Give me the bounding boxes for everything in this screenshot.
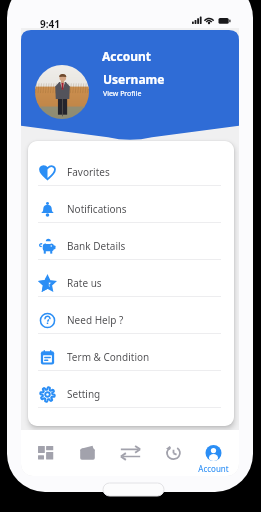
staticText: Account: [198, 463, 229, 474]
staticText: Notifications: [67, 202, 127, 216]
button[interactable]: Rate us: [28, 268, 234, 298]
button[interactable]: Need Help ?: [28, 305, 234, 335]
staticText: Username: [103, 71, 165, 87]
staticText: View Profile: [103, 89, 142, 99]
staticText: Setting: [67, 387, 101, 401]
button[interactable]: grid: [26, 430, 64, 476]
staticText: 9:41: [40, 17, 60, 31]
staticText: Term & Condition: [67, 350, 150, 364]
button[interactable]: Term & Condition: [28, 342, 234, 372]
button[interactable]: Favorites: [28, 157, 234, 187]
button[interactable]: View Profile: [103, 89, 142, 99]
button[interactable]: Notifications: [28, 194, 234, 224]
staticText: Bank Details: [67, 239, 126, 253]
staticText: Favorites: [67, 165, 110, 179]
button[interactable]: Profile photo: [35, 65, 89, 119]
button[interactable]: wallet: [68, 430, 106, 476]
button[interactable]: Setting: [28, 379, 234, 409]
staticText: Rate us: [67, 276, 102, 290]
button[interactable]: swap: [111, 430, 149, 476]
staticText: Account: [102, 48, 151, 64]
staticText: Need Help ?: [67, 313, 124, 327]
button[interactable]: account: [194, 430, 232, 476]
button[interactable]: Bank Details: [28, 231, 234, 261]
button[interactable]: history: [154, 430, 192, 476]
